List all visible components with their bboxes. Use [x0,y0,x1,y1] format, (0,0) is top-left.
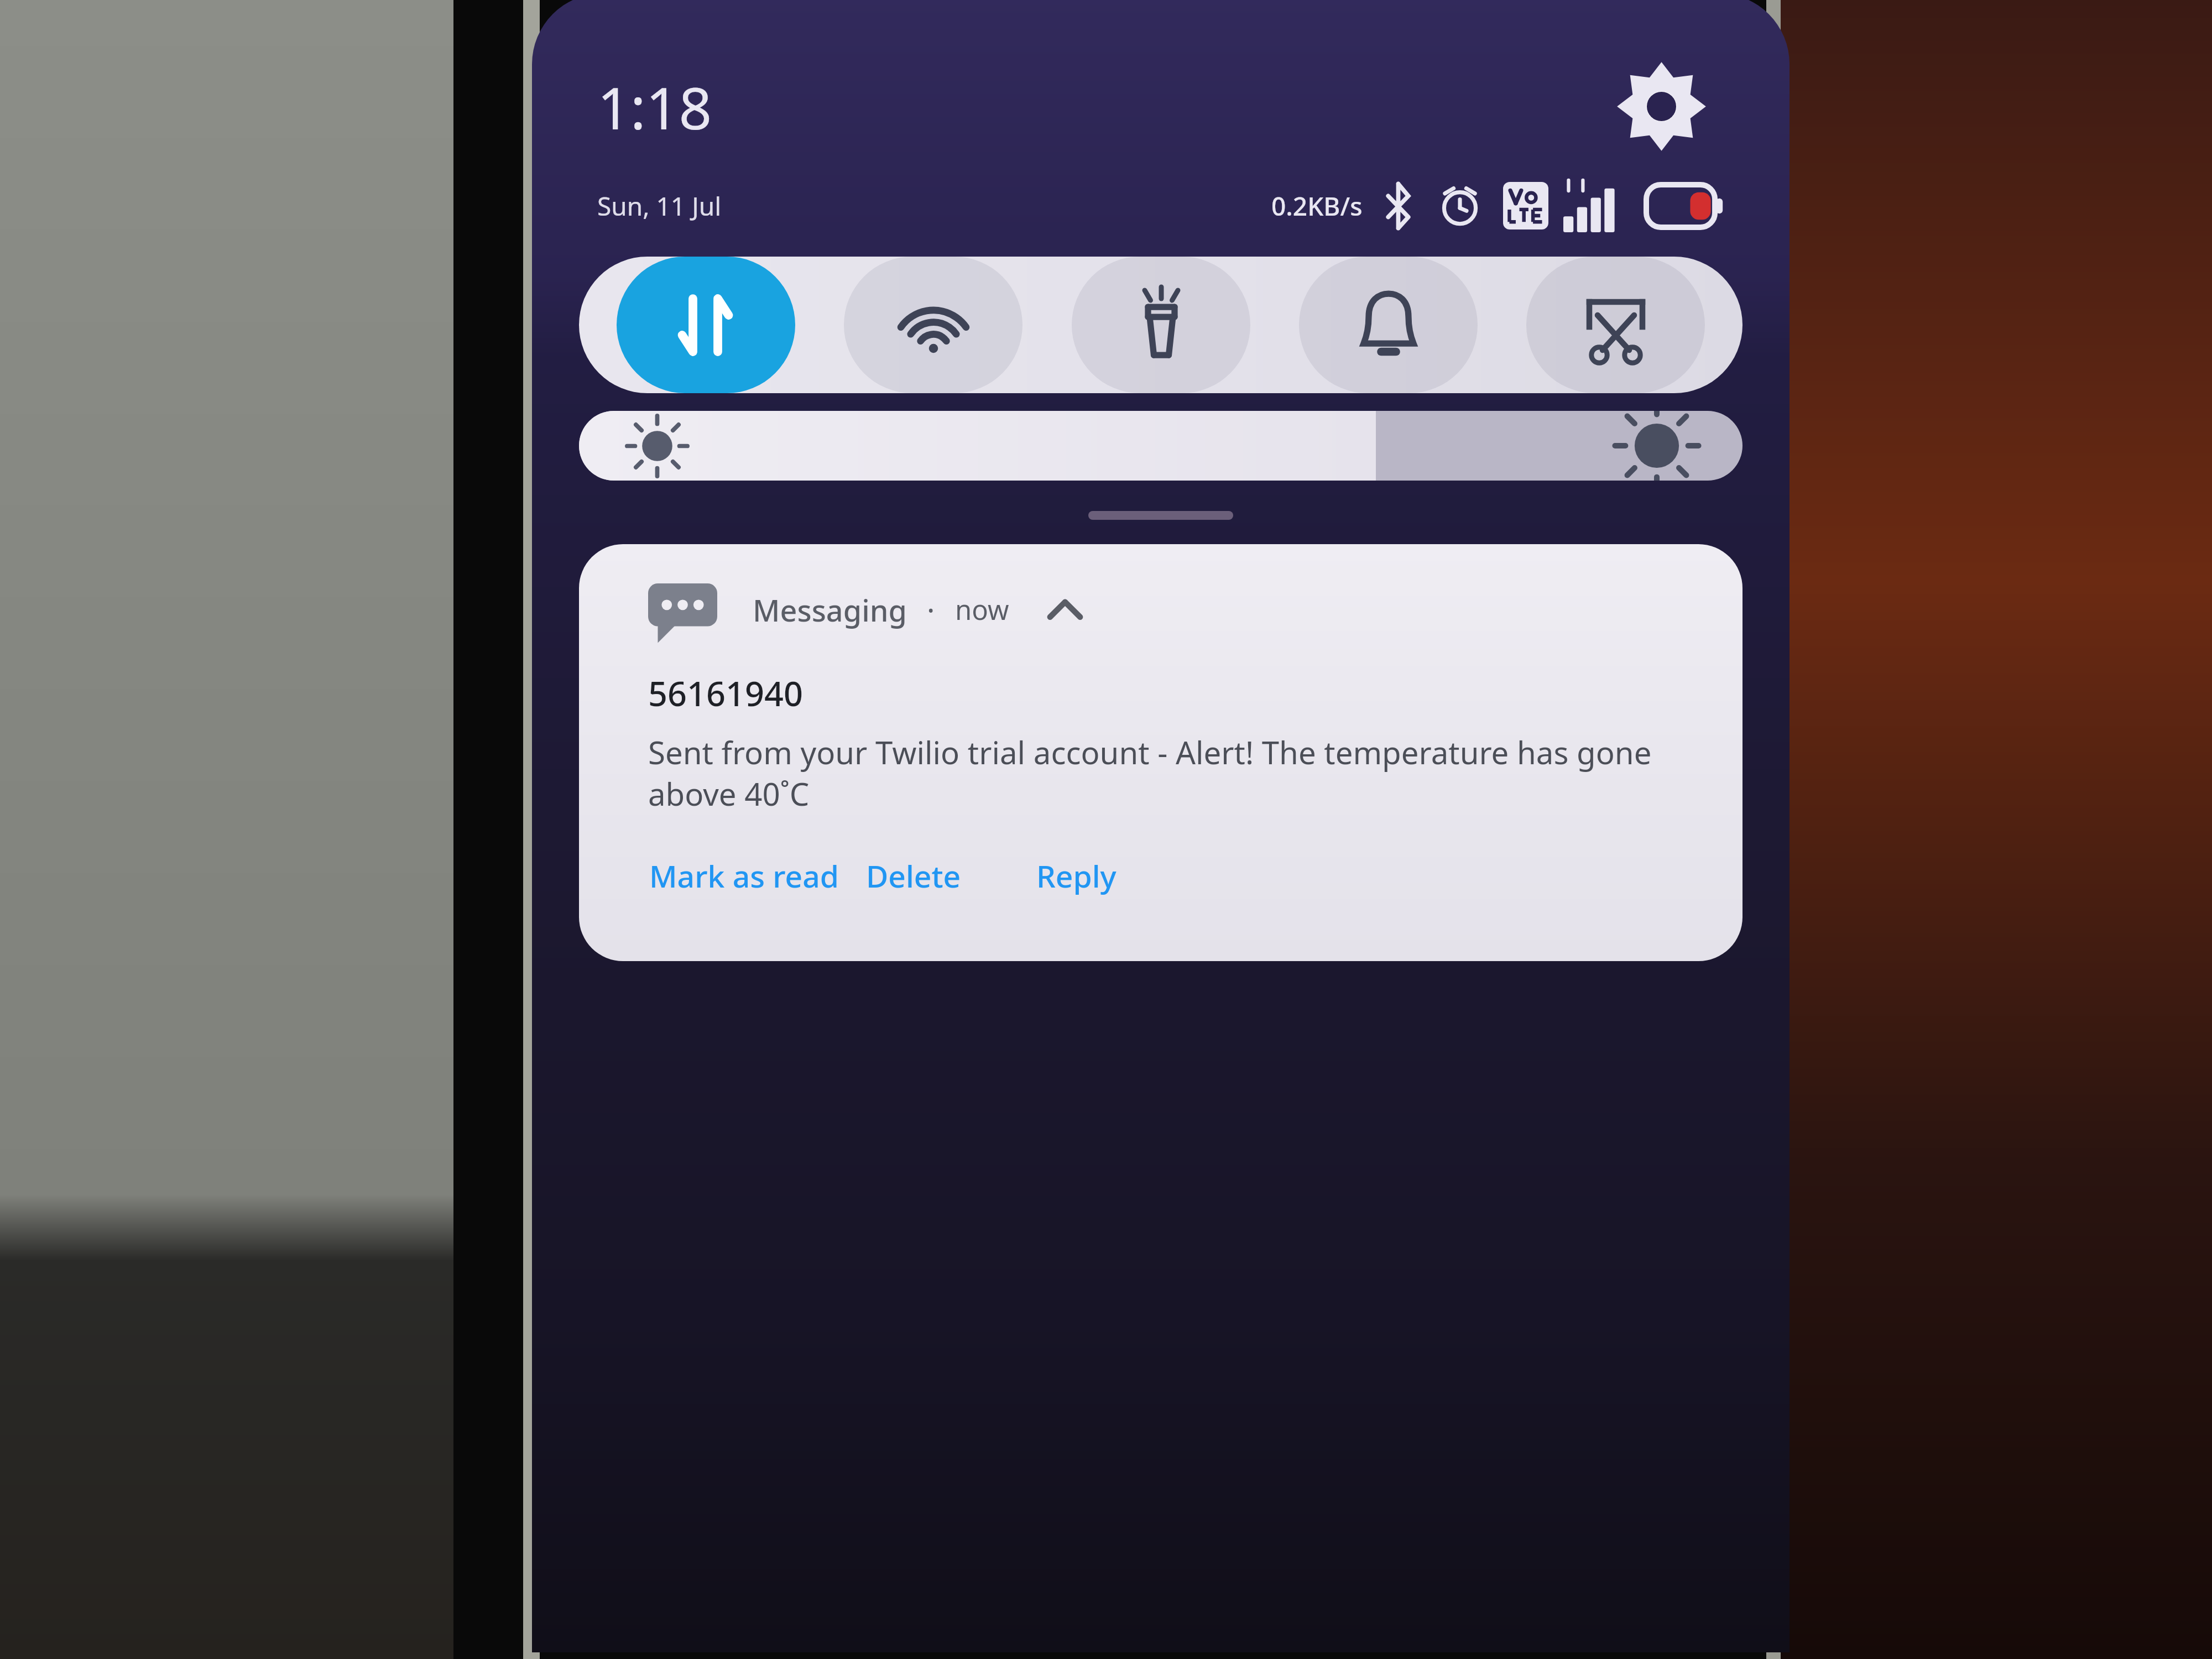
staticText: Sun, 11 Jul [597,189,722,223]
staticText: Delete [866,855,961,896]
button[interactable]: Expand [1088,511,1233,520]
staticText: Reply [1036,855,1117,896]
button[interactable]: Flashlight [1072,257,1250,393]
staticText: Messaging [753,589,907,630]
button[interactable]: Settings [1599,44,1724,169]
staticText: 0.2KB/s [1271,189,1363,223]
button[interactable]: Reply [1035,854,1118,898]
button[interactable]: Messaging [579,544,1743,961]
staticText: now [955,591,1009,628]
button[interactable]: Delete [865,854,962,898]
button[interactable]: Screenshot [1526,257,1705,393]
button[interactable]: Mark as read [648,854,840,898]
staticText: Sent from your Twilio trial account - Al… [648,731,1673,815]
staticText: 56161940 [648,670,804,716]
staticText: · [927,589,935,630]
button[interactable]: Wi-Fi [844,257,1022,393]
staticText: 1:18 [597,67,712,146]
button[interactable]: Mobile data [617,257,795,393]
staticText: Mark as read [649,855,839,896]
button[interactable]: Sound [1299,257,1478,393]
button[interactable]: Brightness [579,411,1743,481]
button[interactable]: Collapse [1037,582,1093,638]
